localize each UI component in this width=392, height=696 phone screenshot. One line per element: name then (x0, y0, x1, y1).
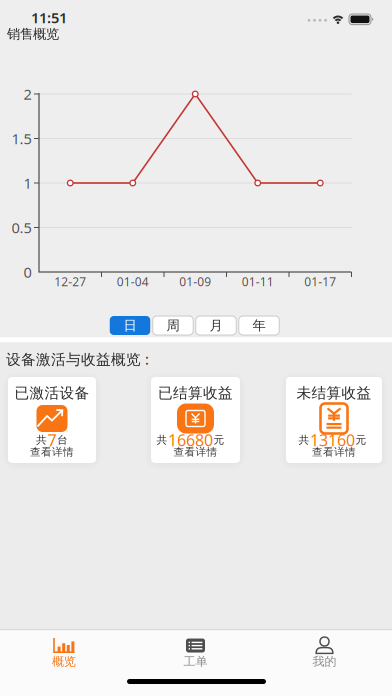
staticText: 01-17 (304, 273, 336, 289)
staticText: 1.5 (11, 129, 31, 148)
staticText: 查看详情 (30, 445, 74, 458)
button[interactable]: 工单 (150, 630, 240, 674)
staticText: 已结算收益 (158, 384, 233, 402)
button[interactable]: 年 (239, 316, 279, 335)
staticText: 0.5 (11, 218, 31, 237)
staticText: 共 (156, 433, 167, 446)
staticText: 台 (57, 433, 68, 446)
staticText: 年 (252, 317, 265, 334)
staticText: 01-04 (117, 273, 149, 289)
button[interactable]: 我的 (279, 630, 369, 674)
staticText: 设备激活与收益概览 : (6, 349, 149, 369)
staticText: 元 (213, 433, 224, 446)
staticText: 月 (209, 317, 222, 334)
staticText: 概览 (52, 654, 76, 669)
staticText: 2 (23, 84, 31, 104)
staticText: 未结算收益 (296, 384, 371, 402)
staticText: 元 (355, 433, 366, 446)
staticText: 01-09 (179, 273, 211, 289)
staticText: 已激活设备 (14, 384, 89, 402)
staticText: 共 (36, 433, 47, 446)
staticText: 销售概览 (7, 26, 59, 42)
staticText: 1 (23, 173, 31, 193)
staticText: 0 (23, 262, 31, 282)
button[interactable]: 查看详情 (173, 446, 217, 458)
staticText: 7 (47, 429, 56, 451)
staticText: 12-27 (54, 273, 86, 289)
staticText: 工单 (183, 654, 207, 669)
staticText: 我的 (312, 654, 336, 669)
staticText: 查看详情 (173, 445, 217, 458)
button[interactable]: 查看详情 (312, 446, 356, 458)
button[interactable]: 查看详情 (30, 446, 74, 458)
button[interactable]: 月 (196, 316, 236, 335)
button[interactable]: 周 (153, 316, 193, 335)
button[interactable]: 概览 (19, 630, 109, 674)
staticText: 周 (166, 317, 179, 334)
staticText: 01-11 (242, 273, 274, 289)
staticText: 13160 (310, 429, 355, 451)
staticText: 查看详情 (312, 445, 356, 458)
staticText: 11:51 (31, 8, 67, 27)
button[interactable]: 日 (110, 316, 150, 335)
staticText: 共 (298, 433, 309, 446)
staticText: 16680 (168, 429, 213, 451)
staticText: 日 (123, 317, 136, 334)
